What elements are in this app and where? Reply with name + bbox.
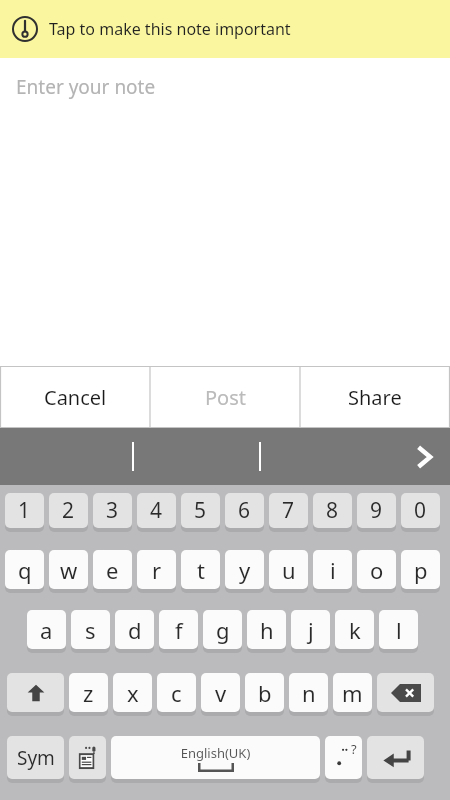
button[interactable]: d bbox=[115, 610, 154, 651]
staticText: o bbox=[370, 555, 384, 585]
staticText: 2 bbox=[62, 496, 75, 525]
staticText: 9 bbox=[370, 496, 383, 525]
button[interactable]: e bbox=[93, 550, 132, 591]
staticText: v bbox=[215, 678, 227, 708]
staticText: e bbox=[106, 555, 119, 585]
staticText: 4 bbox=[150, 496, 163, 525]
staticText: w bbox=[60, 555, 78, 585]
button[interactable]: 3 bbox=[93, 493, 132, 530]
button[interactable]: 5 bbox=[181, 493, 220, 530]
staticText: 7 bbox=[282, 496, 295, 525]
button[interactable]: 1 bbox=[5, 493, 44, 530]
button[interactable]: o bbox=[357, 550, 396, 591]
staticText: k bbox=[349, 615, 361, 645]
staticText: m bbox=[342, 678, 363, 708]
button[interactable]: t bbox=[181, 550, 220, 591]
button[interactable]: n bbox=[289, 673, 328, 714]
staticText: j bbox=[308, 615, 314, 645]
staticText: i bbox=[330, 555, 336, 585]
button[interactable]: y bbox=[225, 550, 264, 591]
staticText: Tap to make this note important bbox=[49, 18, 291, 40]
button[interactable]: Tap to make this note important bbox=[0, 0, 450, 58]
button[interactable]: x bbox=[113, 673, 152, 714]
button[interactable]: v bbox=[201, 673, 240, 714]
staticText: u bbox=[282, 555, 296, 585]
button[interactable]: f bbox=[159, 610, 198, 651]
staticText: t bbox=[197, 555, 205, 585]
button[interactable]: Post bbox=[150, 366, 300, 428]
button[interactable]: Backspace bbox=[377, 673, 434, 714]
staticText: Cancel bbox=[44, 384, 107, 411]
staticText: n bbox=[302, 678, 316, 708]
staticText: 0 bbox=[414, 496, 427, 525]
button[interactable]: Shift bbox=[7, 673, 64, 714]
staticText: Enter your note bbox=[16, 74, 156, 100]
button[interactable]: Enter bbox=[367, 736, 424, 781]
staticText: c bbox=[171, 678, 182, 708]
button[interactable]: English(UK) bbox=[111, 736, 320, 781]
button[interactable]: w bbox=[49, 550, 88, 591]
button[interactable]: Sym bbox=[7, 736, 64, 781]
button[interactable]: 0 bbox=[401, 493, 440, 530]
staticText: l bbox=[396, 615, 402, 645]
staticText: 6 bbox=[238, 496, 251, 525]
button[interactable]: Voice input and clipboard bbox=[69, 736, 106, 781]
staticText: r bbox=[152, 555, 162, 585]
staticText: z bbox=[83, 678, 94, 708]
staticText: p bbox=[414, 555, 428, 585]
staticText: 5 bbox=[194, 496, 207, 525]
button[interactable]: Cancel bbox=[0, 366, 150, 428]
button[interactable]: h bbox=[247, 610, 286, 651]
button[interactable]: 4 bbox=[137, 493, 176, 530]
button[interactable]: j bbox=[291, 610, 330, 651]
button[interactable]: More suggestions bbox=[400, 428, 450, 485]
button[interactable]: 2 bbox=[49, 493, 88, 530]
staticText: b bbox=[258, 678, 272, 708]
button[interactable]: g bbox=[203, 610, 242, 651]
button[interactable]: m bbox=[333, 673, 372, 714]
staticText: x bbox=[127, 678, 139, 708]
staticText: f bbox=[175, 615, 183, 645]
staticText: g bbox=[216, 615, 230, 645]
staticText: h bbox=[260, 615, 274, 645]
staticText: 3 bbox=[106, 496, 119, 525]
button[interactable]: 9 bbox=[357, 493, 396, 530]
button[interactable]: q bbox=[5, 550, 44, 591]
button[interactable]: i bbox=[313, 550, 352, 591]
button[interactable]: p bbox=[401, 550, 440, 591]
button[interactable]: b bbox=[245, 673, 284, 714]
button[interactable]: 7 bbox=[269, 493, 308, 530]
button[interactable]: a bbox=[27, 610, 66, 651]
button[interactable]: u bbox=[269, 550, 308, 591]
button[interactable]: Share bbox=[300, 366, 450, 428]
button[interactable]: l bbox=[379, 610, 418, 651]
staticText: d bbox=[128, 615, 142, 645]
staticText: a bbox=[40, 615, 53, 645]
staticText: English(UK) bbox=[111, 744, 320, 762]
button[interactable]: 8 bbox=[313, 493, 352, 530]
button[interactable]: z bbox=[69, 673, 108, 714]
button[interactable]: r bbox=[137, 550, 176, 591]
staticText: 8 bbox=[326, 496, 339, 525]
staticText: ? bbox=[351, 740, 357, 758]
staticText: q bbox=[18, 555, 32, 585]
button[interactable]: Period bbox=[325, 736, 362, 781]
staticText: Share bbox=[348, 384, 402, 411]
button[interactable]: s bbox=[71, 610, 110, 651]
staticText: 1 bbox=[18, 496, 31, 525]
button[interactable]: 6 bbox=[225, 493, 264, 530]
button[interactable]: c bbox=[157, 673, 196, 714]
button[interactable]: k bbox=[335, 610, 374, 651]
staticText: Sym bbox=[17, 745, 55, 771]
staticText: Post bbox=[205, 384, 246, 411]
staticText: s bbox=[85, 615, 96, 645]
staticText: y bbox=[239, 555, 251, 585]
